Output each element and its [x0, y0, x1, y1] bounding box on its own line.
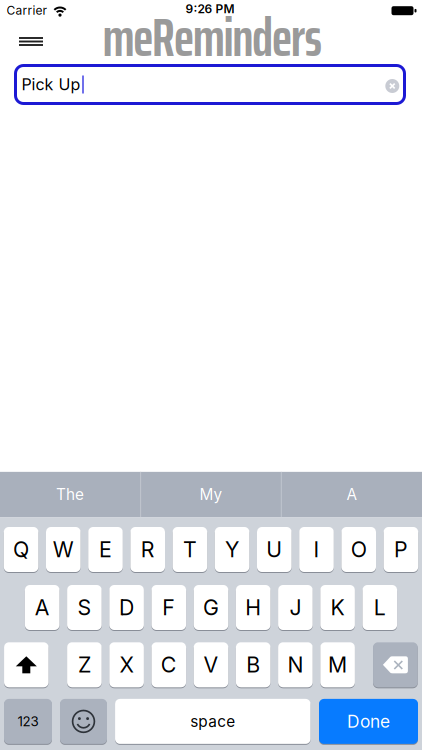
staticText: J: [289, 595, 301, 620]
button[interactable]: L: [362, 584, 397, 630]
staticText: My: [199, 485, 222, 504]
staticText: 123: [17, 713, 38, 729]
staticText: A: [35, 595, 50, 620]
staticText: T: [183, 537, 197, 562]
button[interactable]: Emoji: [60, 698, 107, 744]
staticText: U: [266, 537, 282, 562]
button[interactable]: F: [151, 584, 186, 630]
staticText: X: [120, 652, 134, 678]
button[interactable]: My: [142, 472, 280, 517]
button[interactable]: Reminder title: [14, 64, 406, 105]
button[interactable]: T: [173, 526, 207, 572]
staticText: K: [331, 595, 345, 620]
button[interactable]: H: [236, 584, 270, 630]
button[interactable]: A: [25, 584, 59, 630]
staticText: N: [287, 652, 303, 678]
button[interactable]: Delete: [373, 642, 418, 688]
staticText: S: [77, 595, 91, 620]
button[interactable]: M: [320, 642, 355, 688]
button[interactable]: Shift: [4, 642, 49, 688]
button[interactable]: Z: [67, 642, 102, 688]
button[interactable]: C: [151, 642, 186, 688]
button[interactable]: N: [278, 642, 313, 688]
button[interactable]: X: [109, 642, 144, 688]
staticText: W: [53, 537, 74, 562]
button[interactable]: Done: [319, 698, 418, 744]
staticText: meReminders: [102, 0, 321, 79]
staticText: space: [190, 712, 235, 731]
staticText: M: [328, 652, 347, 678]
button[interactable]: I: [299, 526, 334, 572]
button[interactable]: J: [278, 584, 313, 630]
staticText: The: [56, 485, 84, 504]
button[interactable]: V: [194, 642, 228, 688]
staticText: Y: [225, 537, 239, 562]
button[interactable]: D: [109, 584, 144, 630]
button[interactable]: O: [341, 526, 376, 572]
button[interactable]: space: [115, 698, 311, 744]
button[interactable]: Y: [215, 526, 249, 572]
staticText: A: [346, 485, 357, 504]
staticText: I: [313, 537, 319, 562]
staticText: P: [394, 537, 408, 562]
button[interactable]: U: [257, 526, 292, 572]
button[interactable]: S: [67, 584, 102, 630]
staticText: Q: [13, 537, 29, 562]
staticText: Done: [347, 711, 390, 732]
staticText: C: [161, 652, 177, 678]
button[interactable]: Q: [4, 526, 38, 572]
button[interactable]: E: [88, 526, 123, 572]
staticText: L: [374, 595, 386, 620]
staticText: V: [203, 652, 218, 678]
staticText: 9:26 PM: [185, 2, 234, 16]
button[interactable]: B: [236, 642, 270, 688]
button[interactable]: Clear text: [385, 79, 399, 93]
button[interactable]: A: [283, 472, 421, 517]
staticText: R: [141, 537, 155, 562]
staticText: D: [119, 595, 134, 620]
staticText: G: [203, 595, 219, 620]
button[interactable]: The: [1, 472, 139, 517]
staticText: O: [351, 537, 367, 562]
staticText: F: [162, 595, 175, 620]
button[interactable]: R: [130, 526, 165, 572]
button[interactable]: Numbers: [4, 698, 52, 744]
staticText: H: [245, 595, 261, 620]
button[interactable]: W: [46, 526, 81, 572]
button[interactable]: P: [384, 526, 418, 572]
staticText: Z: [78, 652, 91, 678]
button[interactable]: K: [320, 584, 355, 630]
staticText: Carrier: [6, 3, 47, 18]
staticText: B: [246, 652, 260, 678]
button[interactable]: Menu: [11, 26, 51, 56]
staticText: E: [99, 537, 112, 562]
button[interactable]: G: [194, 584, 228, 630]
staticText: Pick Up: [21, 75, 80, 94]
